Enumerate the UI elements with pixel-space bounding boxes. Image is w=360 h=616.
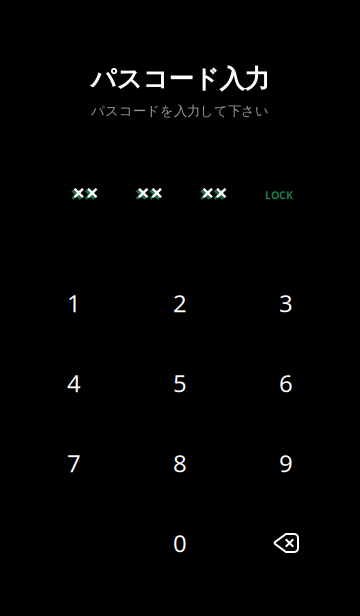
staticText: 2 (173, 287, 187, 319)
staticText: 8 (173, 447, 187, 479)
button[interactable]: 0 (137, 510, 223, 576)
staticText: 6 (279, 367, 293, 399)
button[interactable]: 6 (243, 350, 329, 416)
staticText: 4 (67, 367, 81, 399)
staticText: 0 (173, 527, 187, 559)
staticText: 5 (173, 367, 187, 399)
staticText: 9 (279, 447, 293, 479)
button[interactable]: 1 (31, 270, 117, 336)
button[interactable]: 5 (137, 350, 223, 416)
staticText: LOCK (265, 188, 293, 202)
button[interactable]: 8 (137, 430, 223, 496)
button[interactable]: Delete (243, 510, 329, 576)
staticText: 7 (67, 447, 81, 479)
button[interactable]: 2 (137, 270, 223, 336)
staticText: 1 (67, 287, 81, 319)
button[interactable]: 7 (31, 430, 117, 496)
staticText: パスコードを入力して下さい (91, 103, 269, 119)
button[interactable]: 9 (243, 430, 329, 496)
button[interactable]: 4 (31, 350, 117, 416)
staticText: パスコード入力 (90, 63, 269, 94)
button[interactable]: 3 (243, 270, 329, 336)
staticText: 3 (279, 287, 293, 319)
